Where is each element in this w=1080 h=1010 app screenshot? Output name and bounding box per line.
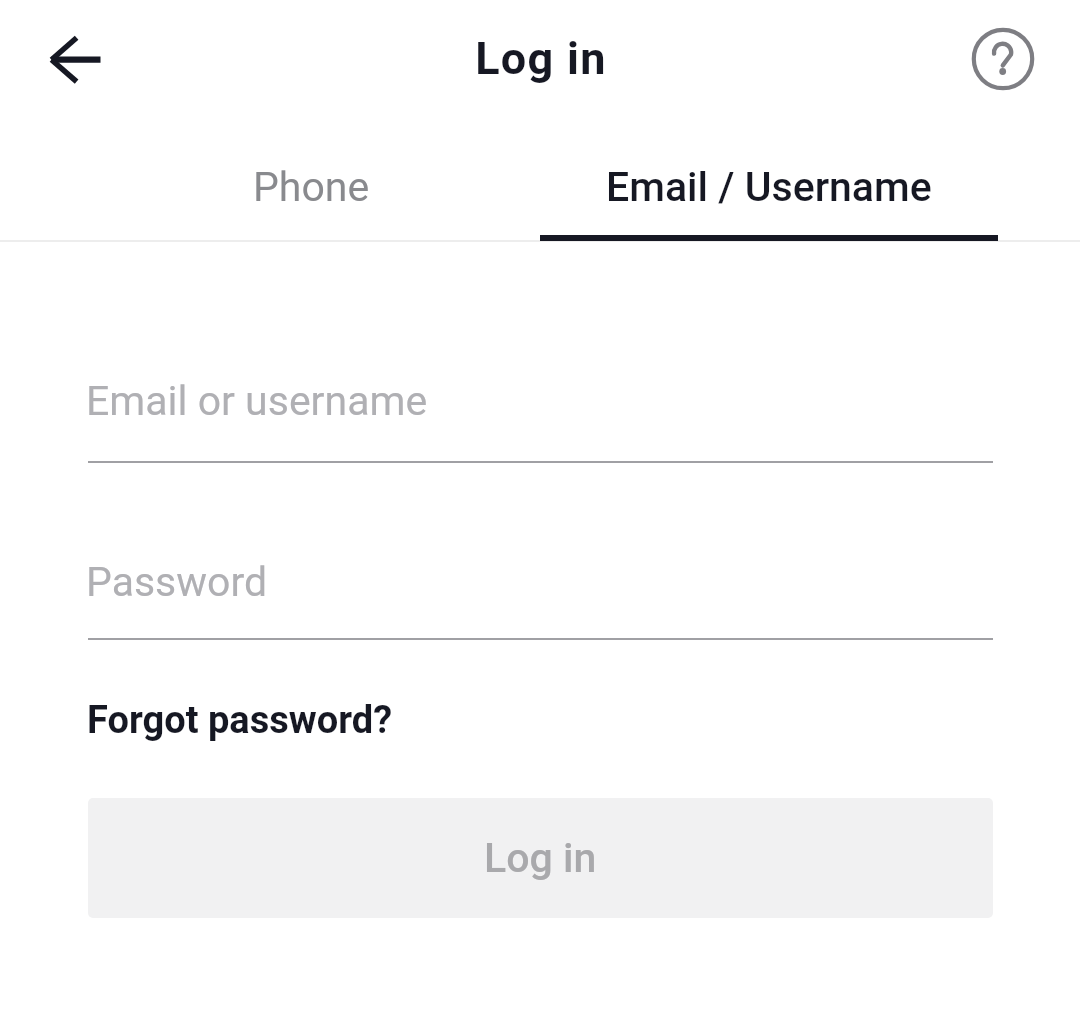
staticText: Log in — [484, 834, 597, 882]
button[interactable]: Back — [20, 20, 100, 100]
button[interactable]: Phone — [135, 132, 488, 242]
button[interactable]: Help — [963, 19, 1043, 99]
staticText: Forgot password? — [87, 698, 393, 743]
staticText: Email / Username — [606, 163, 932, 211]
staticText: Phone — [253, 163, 370, 211]
button[interactable]: Forgot password? — [87, 698, 393, 743]
staticText: Password — [86, 558, 268, 606]
staticText: Log in — [1, 32, 1080, 85]
button[interactable]: Log in — [88, 798, 993, 918]
button[interactable]: Email / Username — [489, 132, 1049, 242]
staticText: Email or username — [86, 377, 428, 425]
